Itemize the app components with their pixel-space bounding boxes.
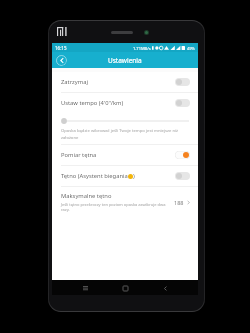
staticText: Tętno (Asystent biegania xyxy=(61,172,128,180)
button[interactable] xyxy=(52,113,198,128)
staticText: 49% xyxy=(187,46,195,51)
button[interactable]: Toggle off xyxy=(175,172,190,180)
button[interactable]: Back xyxy=(55,54,67,66)
staticText: 188 xyxy=(174,199,184,206)
button[interactable]: Toggle off xyxy=(175,99,190,107)
button[interactable]: Toggle off xyxy=(175,78,190,86)
staticText: Pomiar tętna xyxy=(61,151,175,159)
staticText: 16:15 xyxy=(55,45,67,51)
staticText: Zatrzymaj xyxy=(61,78,175,86)
staticText: 1.71MB/s xyxy=(133,46,151,51)
staticText: Ustawienia xyxy=(108,56,142,65)
button[interactable]: Zatrzymaj xyxy=(52,72,198,92)
staticText: Ustaw tempo (4'0"/km) xyxy=(61,99,175,107)
button[interactable]: Toggle on xyxy=(175,151,190,159)
button[interactable]: Tętno (Asystent biegania xyxy=(52,166,198,186)
staticText: Jeśli tętno przekroczy ten poziom opaska… xyxy=(61,202,171,212)
staticText: Opaska będzie wibrować jeśli Twoje tempo… xyxy=(61,128,186,140)
button[interactable]: Home xyxy=(118,281,132,295)
staticText: Maksymalne tętno xyxy=(61,192,112,200)
button[interactable]: Pomiar tętna xyxy=(52,145,198,165)
button[interactable]: Back xyxy=(158,281,172,295)
button[interactable]: Ustaw tempo (4'0"/km) xyxy=(52,93,198,113)
staticText: ) xyxy=(133,172,135,180)
button[interactable]: Recents xyxy=(78,281,92,295)
button[interactable]: Maksymalne tętno xyxy=(52,187,198,217)
